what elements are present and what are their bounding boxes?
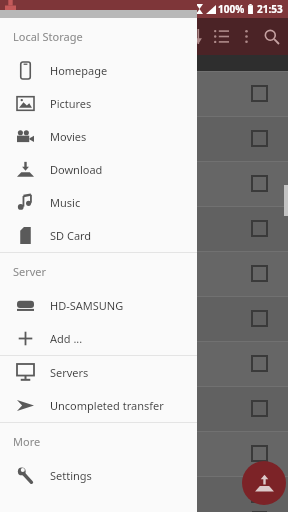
button[interactable]: Uncompleted transfer [0, 389, 197, 422]
button[interactable] [0, 161, 288, 206]
staticText: 21:53 [257, 2, 283, 16]
button[interactable]: Servers [0, 356, 197, 389]
staticText: SD Card [50, 228, 92, 243]
button[interactable] [0, 431, 288, 476]
button[interactable] [0, 251, 288, 296]
staticText: Pictures [50, 96, 92, 111]
button[interactable]: Download [0, 153, 197, 186]
staticText: Download [50, 162, 103, 177]
staticText: Settings [50, 468, 92, 483]
button[interactable] [0, 116, 288, 161]
button[interactable]: Upload [242, 461, 286, 505]
button[interactable] [0, 341, 288, 386]
staticText: Local Storage [13, 29, 83, 44]
staticText: Server [13, 264, 47, 279]
button[interactable] [0, 206, 288, 251]
button[interactable]: View mode [209, 24, 234, 49]
button[interactable]: Search [259, 24, 284, 49]
button[interactable]: Settings [0, 459, 197, 492]
staticText: Music [50, 195, 81, 210]
button[interactable] [0, 296, 288, 341]
button[interactable]: More options [234, 24, 259, 49]
staticText: 100% [218, 2, 245, 16]
button[interactable]: Add ... [0, 322, 197, 355]
staticText: Uncompleted transfer [50, 398, 164, 413]
staticText: HD-SAMSUNG [50, 298, 124, 313]
button[interactable]: Pictures [0, 87, 197, 120]
button[interactable] [0, 476, 288, 512]
button[interactable] [0, 71, 288, 116]
button[interactable]: HD-SAMSUNG [0, 289, 197, 322]
staticText: More [13, 434, 41, 449]
staticText: Add ... [50, 331, 83, 346]
button[interactable]: Homepage [0, 54, 197, 87]
button[interactable]: Sort [184, 24, 209, 49]
button[interactable]: Music [0, 186, 197, 219]
button[interactable] [0, 386, 288, 431]
button[interactable]: SD Card [0, 219, 197, 252]
staticText: Movies [50, 129, 87, 144]
staticText: Servers [50, 365, 89, 380]
button[interactable]: Movies [0, 120, 197, 153]
staticText: Homepage [50, 63, 108, 78]
